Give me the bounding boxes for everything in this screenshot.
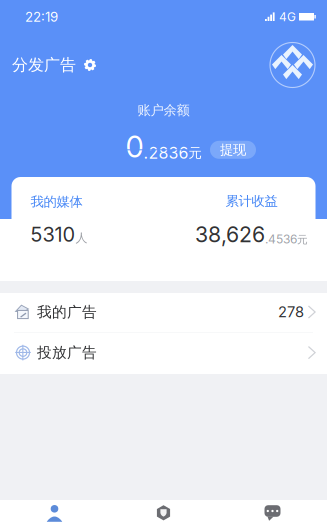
staticText: 元 [188, 145, 201, 161]
staticText: 人 [75, 230, 87, 245]
staticText: 22:19 [25, 9, 58, 25]
staticText: 0 [125, 129, 143, 165]
button[interactable]: Security [109, 500, 218, 528]
staticText: .2836 [143, 143, 188, 163]
staticText: 投放广告 [37, 343, 97, 362]
staticText: 元 [297, 233, 308, 246]
button[interactable]: Me [0, 500, 109, 528]
staticText: 我的广告 [37, 303, 97, 321]
staticText: 38,626 [195, 221, 265, 247]
staticText: .4536 [265, 232, 297, 246]
staticText: 累计收益 [225, 193, 277, 209]
staticText: 4G [279, 10, 296, 24]
button[interactable]: 投放广告 [0, 333, 327, 373]
button[interactable]: Brand [270, 42, 315, 87]
button[interactable]: 我的广告 [0, 292, 327, 332]
staticText: 分发广告 [12, 55, 76, 75]
button[interactable]: 提现 [210, 141, 256, 159]
staticText: 我的媒体 [30, 193, 82, 210]
staticText: 278 [278, 303, 304, 321]
button[interactable]: Settings [82, 57, 98, 73]
button[interactable]: Messages [218, 500, 327, 528]
staticText: 账户余额 [137, 102, 189, 119]
staticText: 5310 [30, 222, 75, 246]
staticText: 提现 [220, 141, 246, 158]
